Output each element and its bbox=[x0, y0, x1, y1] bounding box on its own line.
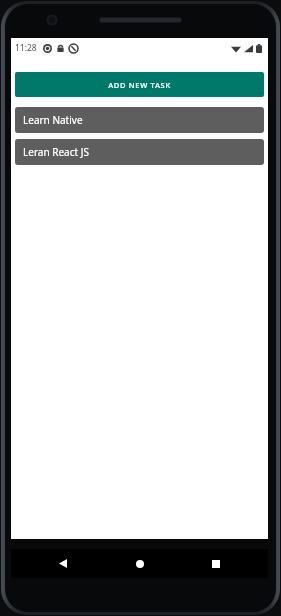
button[interactable]: Leran React JS bbox=[15, 139, 264, 165]
staticText: ADD NEW TASK bbox=[108, 80, 171, 90]
button[interactable]: ADD NEW TASK bbox=[15, 72, 264, 97]
button[interactable]: Learn Native bbox=[15, 107, 264, 133]
button[interactable]: Home bbox=[115, 549, 165, 578]
button[interactable]: Recent apps bbox=[191, 549, 241, 578]
button[interactable]: Back bbox=[38, 549, 88, 578]
staticText: 11:28 bbox=[15, 42, 37, 54]
staticText: Learn Native bbox=[23, 113, 83, 127]
staticText: Leran React JS bbox=[23, 145, 89, 159]
